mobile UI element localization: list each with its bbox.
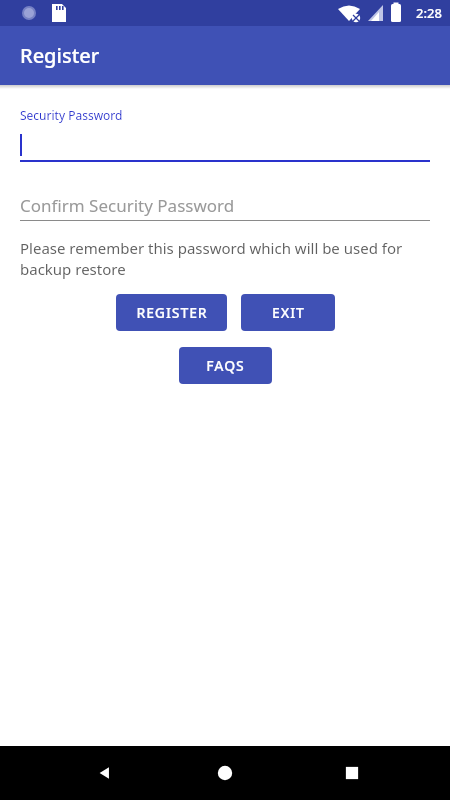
staticText: Please remember this password which will… — [20, 238, 430, 280]
staticText: Confirm Security Password — [20, 194, 235, 217]
button[interactable]: Security Password — [20, 107, 430, 162]
staticText: REGISTER — [136, 303, 208, 322]
button[interactable]: EXIT — [241, 294, 335, 331]
button[interactable]: Recent apps — [317, 746, 387, 800]
button[interactable]: Home — [190, 746, 260, 800]
staticText: Register — [20, 42, 100, 69]
staticText: EXIT — [272, 303, 305, 322]
staticText: 2:28 — [416, 4, 442, 22]
staticText: Security Password — [20, 107, 123, 123]
button[interactable]: FAQS — [179, 347, 272, 384]
button[interactable]: REGISTER — [116, 294, 227, 331]
staticText: FAQS — [206, 356, 245, 375]
button[interactable]: Confirm Security Password — [20, 192, 430, 221]
button[interactable]: Back — [70, 746, 140, 800]
